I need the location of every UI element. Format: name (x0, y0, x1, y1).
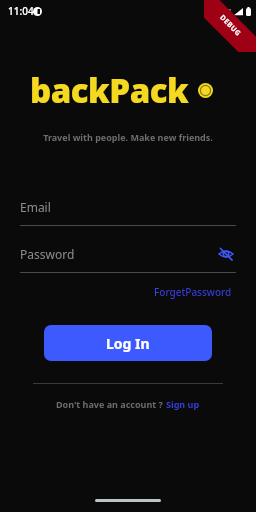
button[interactable]: ForgetPassword (152, 283, 234, 301)
staticText: ForgetPassword (154, 285, 232, 299)
staticText: Travel with people. Make new friends. (0, 131, 256, 143)
button[interactable]: Toggle password visibility (216, 244, 236, 264)
staticText: Don't have an account ? (56, 398, 166, 410)
staticText: 11:04 (8, 4, 34, 18)
button[interactable]: Password (20, 244, 236, 273)
button[interactable]: Don't have an account ? (0, 398, 256, 410)
staticText: DEBUG (217, 13, 244, 39)
staticText: backPack (30, 68, 189, 113)
staticText: Log In (106, 334, 150, 353)
button[interactable]: Log In (44, 325, 212, 361)
staticText: Password (20, 246, 75, 262)
button[interactable]: Email (20, 199, 236, 226)
staticText: Email (20, 199, 51, 215)
staticText: Sign up (166, 398, 200, 410)
